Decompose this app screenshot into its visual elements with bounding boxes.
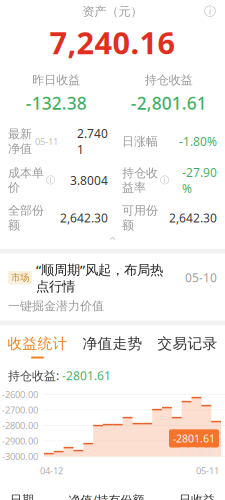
staticText: 05-11: [35, 135, 58, 148]
staticText: -2700.00: [2, 404, 38, 416]
staticText: 05-11: [196, 464, 219, 477]
staticText: ⓘ: [204, 4, 216, 19]
staticText: 7,240.16: [49, 22, 175, 63]
button[interactable]: 净值走势: [75, 325, 150, 367]
staticText: 全部份额: [8, 203, 44, 233]
staticText: 05-10: [185, 270, 217, 286]
staticText: -2,801.61: [131, 91, 207, 114]
staticText: ⓘ: [46, 174, 55, 186]
staticText: -2900.00: [2, 435, 38, 447]
staticText: 一键掘金潜力价值: [8, 299, 104, 313]
staticText: -2800.00: [2, 419, 38, 432]
staticText: 成本单价: [8, 165, 44, 195]
staticText: 2,642.30: [169, 210, 217, 226]
staticText: 日期: [10, 492, 34, 500]
staticText: 收益统计: [7, 334, 67, 352]
staticText: ⌃: [107, 234, 118, 249]
staticText: 日收益: [179, 492, 215, 500]
staticText: 资产（元）: [82, 4, 142, 19]
staticText: “顺周期”风起，布局热点行情: [36, 261, 163, 295]
staticText: 昨日收益: [32, 73, 80, 87]
staticText: 可用份额: [122, 203, 158, 233]
staticText: 2,642.30: [60, 210, 108, 226]
staticText: 市场: [11, 272, 29, 283]
staticText: -2801.61: [173, 431, 215, 446]
staticText: 净值/持有份额: [68, 492, 144, 500]
button[interactable]: 市场: [0, 254, 225, 320]
staticText: -132.38: [26, 91, 87, 114]
staticText: 日涨幅: [122, 134, 158, 149]
button[interactable]: Asset info: [201, 5, 219, 19]
staticText: -2600.00: [2, 388, 38, 401]
staticText: 3.8004: [70, 172, 108, 188]
staticText: 天天基金: [179, 446, 215, 457]
staticText: 2.7401: [77, 125, 108, 157]
staticText: 04-12: [40, 464, 63, 477]
staticText: 持仓收益率: [122, 165, 158, 195]
staticText: 最新净值: [8, 127, 32, 156]
staticText: 持仓收益:: [8, 367, 59, 383]
staticText: -2801.61: [62, 367, 111, 383]
button[interactable]: 收益统计: [0, 325, 75, 367]
staticText: 持仓收益: [145, 73, 193, 87]
staticText: 净值走势: [82, 334, 142, 352]
button[interactable]: Collapse: [92, 236, 132, 248]
staticText: -1.80%: [179, 133, 217, 149]
staticText: -3000.00: [2, 450, 38, 463]
staticText: ⓘ: [160, 174, 169, 186]
staticText: 交易记录: [157, 334, 217, 352]
staticText: -27.90%: [182, 164, 217, 196]
button[interactable]: 交易记录: [150, 325, 225, 367]
